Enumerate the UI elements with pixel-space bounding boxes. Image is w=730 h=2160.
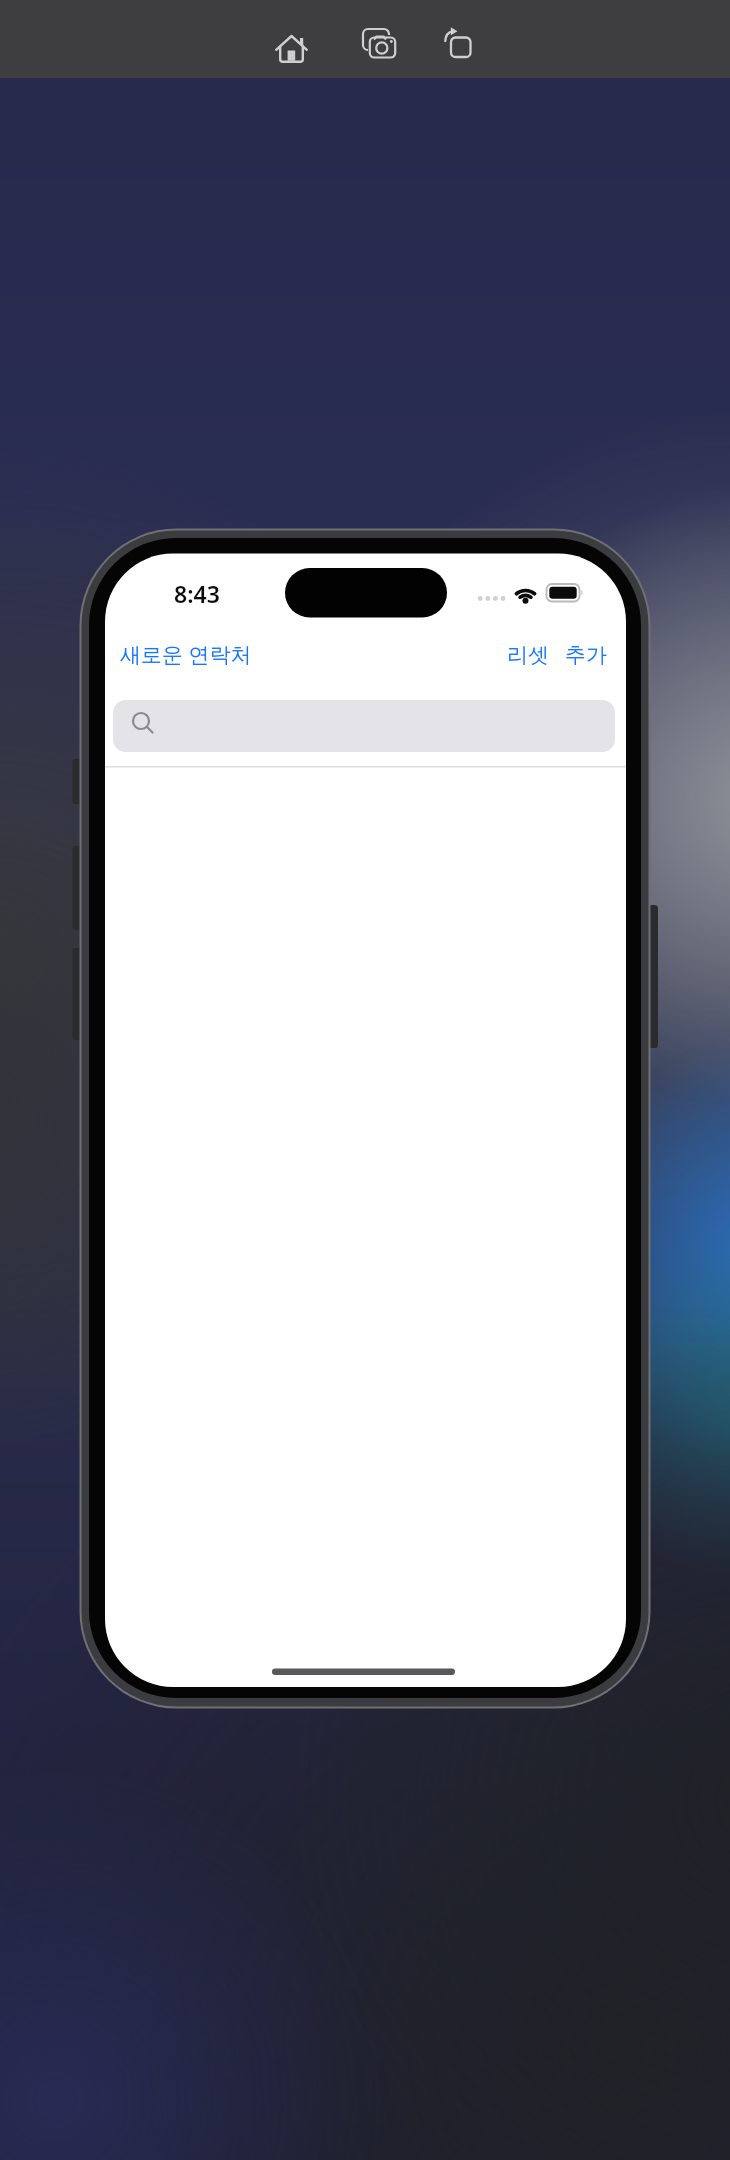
button[interactable]	[357, 21, 402, 66]
staticText: 새로운 연락처	[120, 640, 252, 669]
staticText: 8:43	[174, 578, 220, 609]
button[interactable]	[269, 21, 314, 66]
staticText: 추가	[565, 642, 607, 668]
button[interactable]: 리셋	[505, 638, 551, 671]
staticText: 리셋	[507, 642, 549, 668]
button[interactable]: 추가	[560, 638, 612, 671]
button[interactable]	[113, 700, 615, 752]
button[interactable]: 새로운 연락처	[120, 638, 260, 671]
button[interactable]	[435, 21, 480, 66]
